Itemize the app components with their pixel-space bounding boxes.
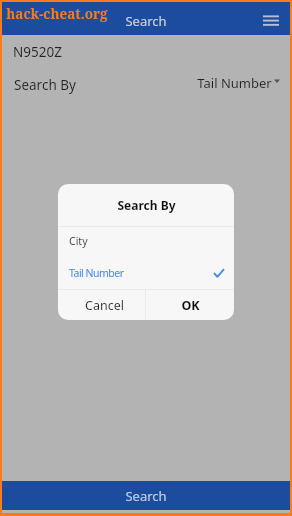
staticText: hack-cheat.org: [6, 5, 108, 23]
button[interactable]: City: [58, 227, 234, 258]
staticText: Search: [125, 487, 167, 505]
staticText: Cancel: [85, 297, 124, 314]
button[interactable]: Tail Number: [58, 258, 234, 289]
staticText: Search: [125, 12, 167, 30]
staticText: City: [69, 234, 88, 248]
button[interactable]: OK: [146, 290, 234, 320]
staticText: Tail Number: [197, 74, 272, 92]
button[interactable]: Search: [2, 481, 290, 510]
staticText: Search By: [117, 197, 176, 213]
staticText: Search By: [14, 76, 76, 94]
button[interactable]: Menu: [258, 7, 284, 33]
button[interactable]: Search By: [2, 66, 290, 98]
staticText: N9520Z: [13, 43, 62, 61]
staticText: Tail Number: [69, 266, 124, 280]
button[interactable]: N9520Z: [2, 35, 290, 66]
staticText: OK: [181, 297, 200, 314]
button[interactable]: Cancel: [58, 290, 145, 320]
